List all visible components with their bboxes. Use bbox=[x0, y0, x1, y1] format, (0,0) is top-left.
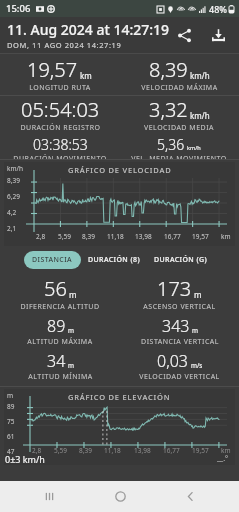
staticText: DIFERENCIA ALTITUD bbox=[20, 302, 100, 312]
staticText: ASCENSO VERTICAL bbox=[143, 302, 216, 312]
staticText: ALTITUD MÍNIMA bbox=[28, 372, 93, 382]
staticText: 16,77 bbox=[163, 446, 180, 455]
staticText: 2,8 bbox=[32, 446, 42, 455]
staticText: 19,57 bbox=[192, 446, 209, 455]
staticText: 11. Aug 2024 at 14:27:19 bbox=[7, 20, 170, 39]
staticText: 13,98 bbox=[134, 446, 151, 455]
staticText: 03:38:53 bbox=[33, 135, 88, 154]
staticText: DURACIÓN (8) bbox=[88, 255, 140, 265]
staticText: km/h bbox=[187, 144, 201, 152]
staticText: km bbox=[221, 446, 231, 455]
staticText: 8,39 bbox=[82, 232, 95, 241]
staticText: m bbox=[68, 326, 74, 335]
staticText: DISTANCIA VERTICAL bbox=[141, 337, 219, 347]
staticText: 6,29 bbox=[7, 192, 20, 201]
staticText: m/s bbox=[191, 361, 203, 370]
staticText: DOM, 11 AGO 2024 14:27:19 bbox=[7, 40, 122, 50]
staticText: 56 bbox=[44, 275, 67, 302]
staticText: m bbox=[194, 289, 202, 300]
staticText: 75 bbox=[7, 417, 15, 426]
staticText: 5,59 bbox=[58, 232, 71, 241]
staticText: 8,39 bbox=[79, 446, 92, 455]
staticText: km/h bbox=[190, 110, 210, 121]
staticText: ALTITUD MÁXIMA bbox=[27, 337, 93, 347]
button[interactable]: GRÁFICO DE VELOCIDAD bbox=[4, 162, 235, 246]
staticText: GRÁFICO DE ELEVACIÓN bbox=[68, 392, 171, 402]
staticText: LONGITUD RUTA bbox=[29, 83, 91, 93]
staticText: 8,39 bbox=[149, 56, 188, 83]
staticText: m bbox=[69, 289, 77, 300]
button[interactable]: Recent apps bbox=[27, 481, 71, 512]
staticText: 19,57 bbox=[27, 56, 78, 83]
staticText: 48% bbox=[209, 3, 227, 15]
staticText: m bbox=[68, 361, 74, 370]
staticText: 343 bbox=[162, 315, 190, 337]
staticText: VELOCIDAD MÁXIMA bbox=[141, 83, 218, 93]
staticText: 8,39 bbox=[7, 176, 20, 185]
staticText: km/h bbox=[190, 70, 210, 81]
button[interactable]: DURACIÓN (8) bbox=[81, 251, 147, 269]
staticText: 13,98 bbox=[135, 232, 152, 241]
button[interactable]: DURACIÓN (G) bbox=[147, 251, 215, 269]
button[interactable]: GRÁFICO DE ELEVACIÓN bbox=[4, 389, 235, 465]
button[interactable]: Download bbox=[201, 18, 235, 52]
staticText: 5,59 bbox=[54, 446, 67, 455]
staticText: 11,18 bbox=[104, 446, 121, 455]
staticText: 61 bbox=[7, 432, 15, 441]
staticText: 34 bbox=[47, 350, 66, 372]
staticText: VELOCIDAD VERTICAL bbox=[139, 372, 220, 382]
staticText: DURACIÓN MOVIMIENTO bbox=[13, 154, 107, 159]
staticText: DURACIÓN (G) bbox=[154, 255, 208, 265]
staticText: 05:54:03 bbox=[21, 96, 100, 123]
staticText: 4,2 bbox=[7, 208, 17, 217]
staticText: 0±3 km/h bbox=[5, 453, 45, 465]
staticText: m bbox=[7, 391, 14, 400]
staticText: km/h bbox=[7, 164, 23, 173]
staticText: 3,32 bbox=[149, 96, 188, 123]
button[interactable]: DISTANCIA bbox=[24, 251, 81, 269]
staticText: 15:06 bbox=[6, 2, 31, 15]
staticText: DURACIÓN REGISTRO bbox=[20, 123, 101, 133]
staticText: 89 bbox=[47, 315, 66, 337]
staticText: VEL. MEDIA MOVIMIENTO bbox=[131, 154, 227, 159]
staticText: 47 bbox=[7, 447, 15, 456]
staticText: 89 bbox=[7, 402, 15, 411]
staticText: 2,8 bbox=[36, 232, 46, 241]
staticText: 2,1 bbox=[7, 224, 17, 233]
button[interactable]: Home bbox=[98, 481, 142, 512]
button[interactable]: Share bbox=[167, 18, 201, 52]
button[interactable]: Back bbox=[168, 481, 212, 512]
staticText: 11,18 bbox=[107, 232, 124, 241]
staticText: VELOCIDAD MEDIA bbox=[144, 123, 214, 133]
staticText: 5,36 bbox=[157, 135, 185, 154]
staticText: 0,03 bbox=[157, 350, 189, 372]
staticText: km bbox=[80, 70, 92, 81]
staticText: km bbox=[221, 232, 231, 241]
staticText: 16,77 bbox=[164, 232, 181, 241]
staticText: DISTANCIA bbox=[32, 255, 73, 265]
staticText: GRÁFICO DE VELOCIDAD bbox=[68, 165, 172, 175]
staticText: m bbox=[192, 326, 198, 335]
staticText: 173 bbox=[157, 275, 192, 302]
staticText: __.° bbox=[217, 454, 229, 464]
staticText: 19,57 bbox=[192, 232, 209, 241]
